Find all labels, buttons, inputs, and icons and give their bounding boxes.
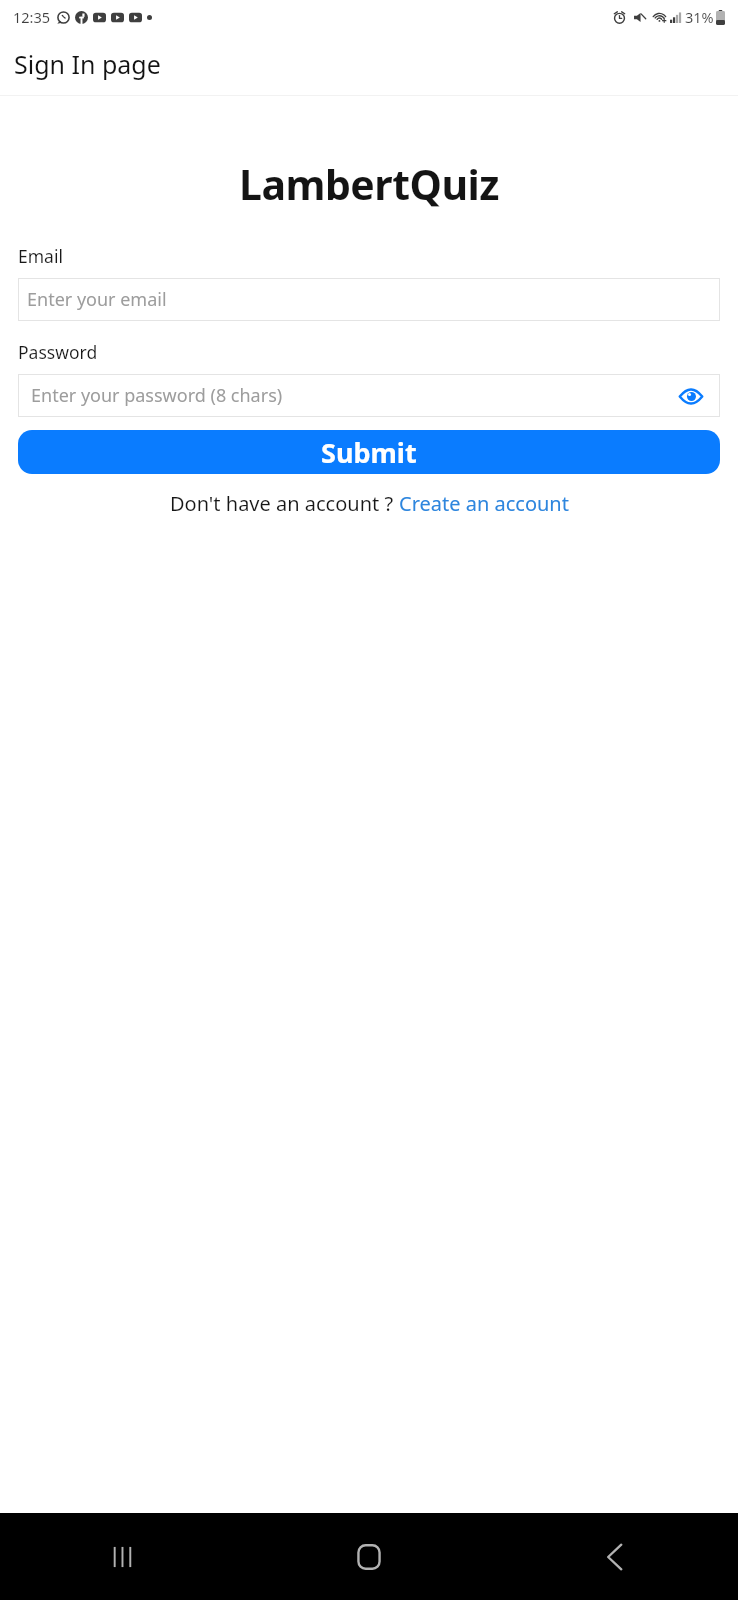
button[interactable]: Submit bbox=[18, 430, 720, 474]
staticText: Create an account bbox=[399, 490, 569, 517]
button[interactable]: Enter your password (8 chars) bbox=[18, 374, 720, 417]
staticText: Sign In page bbox=[14, 47, 161, 81]
button[interactable]: Recent apps bbox=[0, 1513, 246, 1600]
button[interactable]: Create an account bbox=[399, 490, 569, 517]
staticText: Password bbox=[18, 340, 98, 364]
button[interactable]: Home bbox=[246, 1513, 492, 1600]
button[interactable]: Show password bbox=[676, 381, 706, 411]
staticText: 12:35 bbox=[13, 7, 51, 27]
staticText: Enter your email bbox=[27, 287, 167, 312]
staticText: 31% bbox=[685, 7, 714, 27]
staticText: Email bbox=[18, 244, 63, 268]
staticText: LambertQuiz bbox=[0, 156, 738, 212]
button[interactable]: Enter your email bbox=[18, 278, 720, 321]
button[interactable]: Back bbox=[492, 1513, 738, 1600]
staticText: Don't have an account ? bbox=[170, 490, 399, 517]
staticText: Enter your password (8 chars) bbox=[31, 383, 283, 408]
staticText: Submit bbox=[321, 434, 417, 471]
